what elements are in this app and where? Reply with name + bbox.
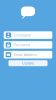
staticText: Email Address	[14, 52, 37, 57]
button[interactable]: Username	[4, 31, 52, 39]
button[interactable]: Password	[4, 41, 52, 49]
staticText: Update	[22, 61, 34, 65]
staticText: Password	[14, 42, 30, 47]
button[interactable]: Email Address	[4, 51, 52, 58]
staticText: Username	[14, 33, 31, 37]
button[interactable]: Update	[8, 60, 47, 66]
